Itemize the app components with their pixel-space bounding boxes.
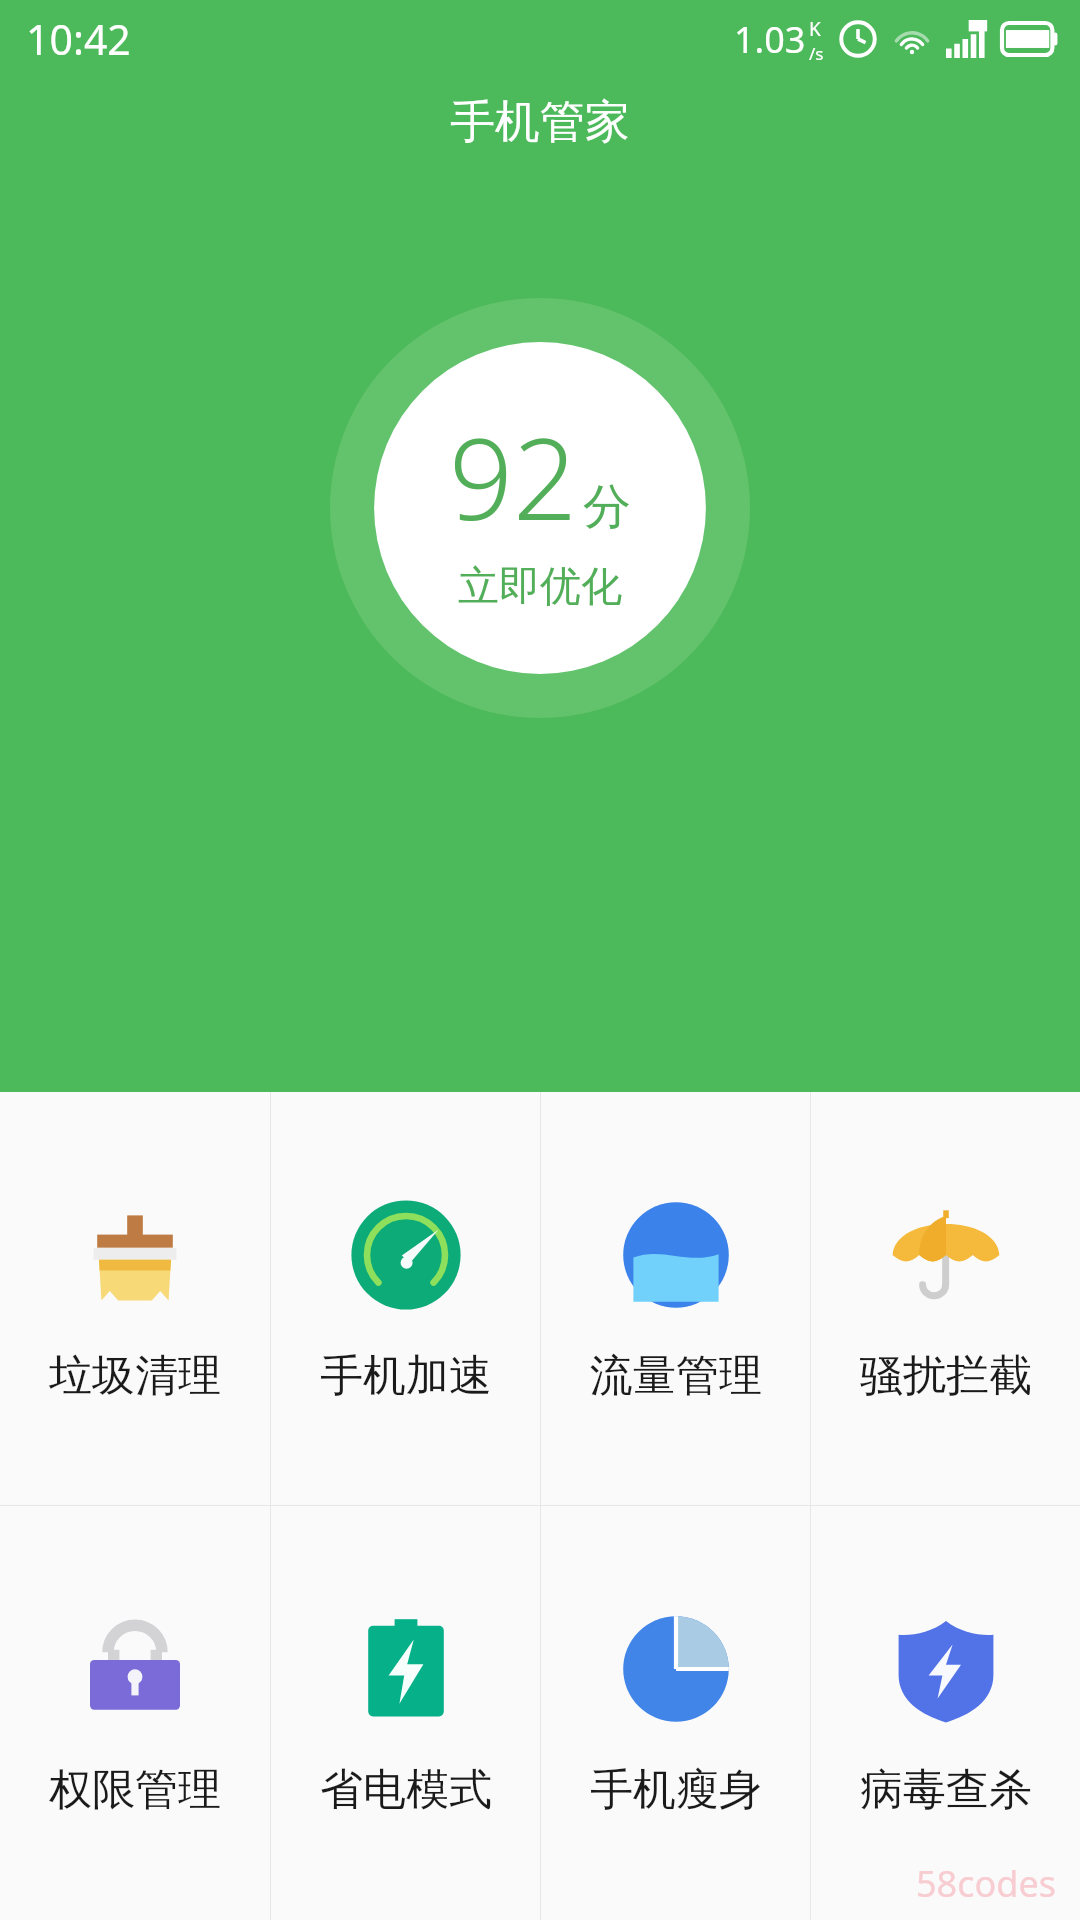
button[interactable]: 权限管理 (0, 1506, 270, 1920)
button[interactable]: 省电模式 (271, 1506, 540, 1920)
button[interactable]: 立即优化 92分 (330, 298, 750, 718)
button[interactable]: 骚扰拦截 (811, 1092, 1080, 1505)
staticText: 垃圾清理 (49, 1349, 221, 1403)
staticText: 手机瘦身 (590, 1763, 762, 1817)
staticText: 病毒查杀 (860, 1763, 1032, 1817)
staticText: 手机管家 (450, 94, 630, 151)
staticText: 立即优化 (458, 561, 622, 613)
button[interactable]: 病毒查杀 (811, 1506, 1080, 1920)
staticText: 权限管理 (49, 1763, 221, 1817)
staticText: K (809, 16, 821, 42)
staticText: 省电模式 (320, 1763, 492, 1817)
button[interactable]: 流量管理 (541, 1092, 810, 1505)
staticText: 骚扰拦截 (860, 1349, 1032, 1403)
staticText: 手机加速 (320, 1349, 492, 1403)
staticText: 流量管理 (590, 1349, 762, 1403)
staticText: 58codes (916, 1859, 1056, 1908)
button[interactable]: 手机瘦身 (541, 1506, 810, 1920)
staticText: /s (809, 42, 824, 65)
button[interactable]: 垃圾清理 (0, 1092, 270, 1505)
button[interactable]: 手机加速 (271, 1092, 540, 1505)
staticText: 92 (449, 400, 577, 553)
staticText: 10:42 (26, 11, 131, 67)
staticText: 分 (583, 477, 631, 537)
staticText: 1.03 (734, 15, 806, 64)
